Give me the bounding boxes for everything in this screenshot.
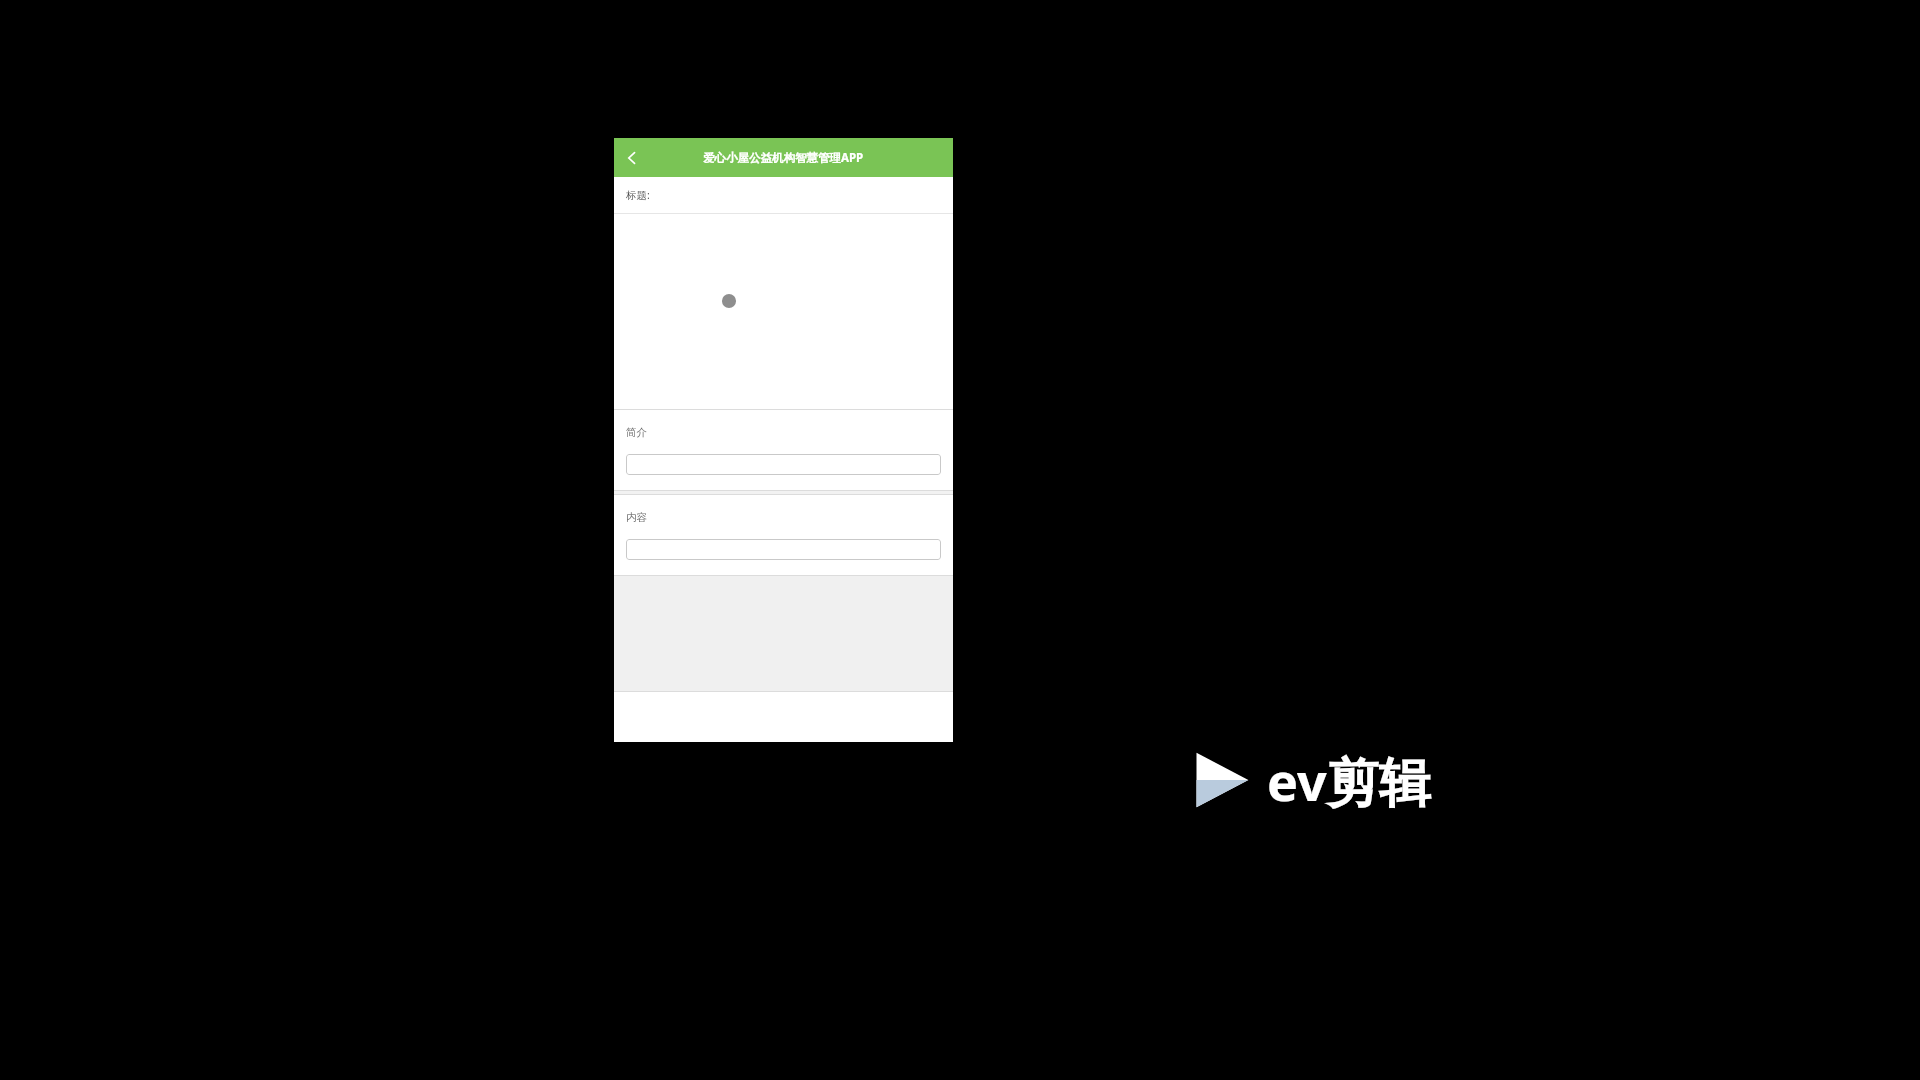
staticText: 爱心小屋公益机构智慧管理APP [703, 150, 864, 166]
staticText: ev剪辑 [1267, 745, 1431, 816]
button[interactable]: 标题: [614, 177, 953, 213]
button[interactable] [626, 539, 941, 560]
staticText: 标题: [626, 188, 650, 202]
button[interactable]: Back [614, 138, 650, 177]
button[interactable] [626, 454, 941, 475]
staticText: 简介 [626, 426, 647, 439]
staticText: 内容 [626, 511, 647, 524]
